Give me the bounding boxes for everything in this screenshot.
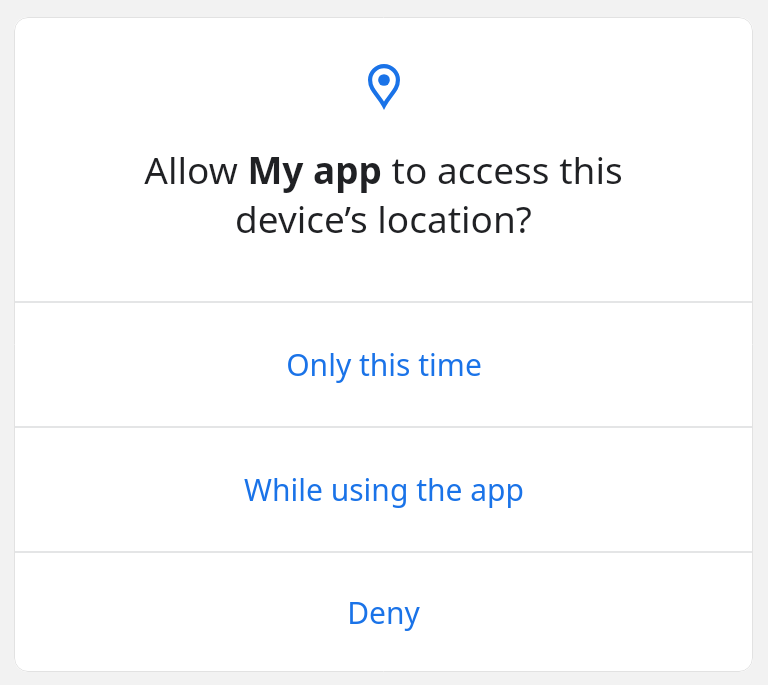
button[interactable]: Only this time bbox=[14, 303, 753, 426]
button[interactable]: Deny bbox=[14, 553, 753, 672]
staticText: Only this time bbox=[286, 344, 482, 385]
button[interactable]: While using the app bbox=[14, 428, 753, 551]
staticText: Allow My app to access this device’s loc… bbox=[84, 144, 683, 244]
staticText: While using the app bbox=[244, 469, 524, 510]
staticText: Deny bbox=[347, 592, 420, 633]
other: Location bbox=[368, 64, 400, 107]
